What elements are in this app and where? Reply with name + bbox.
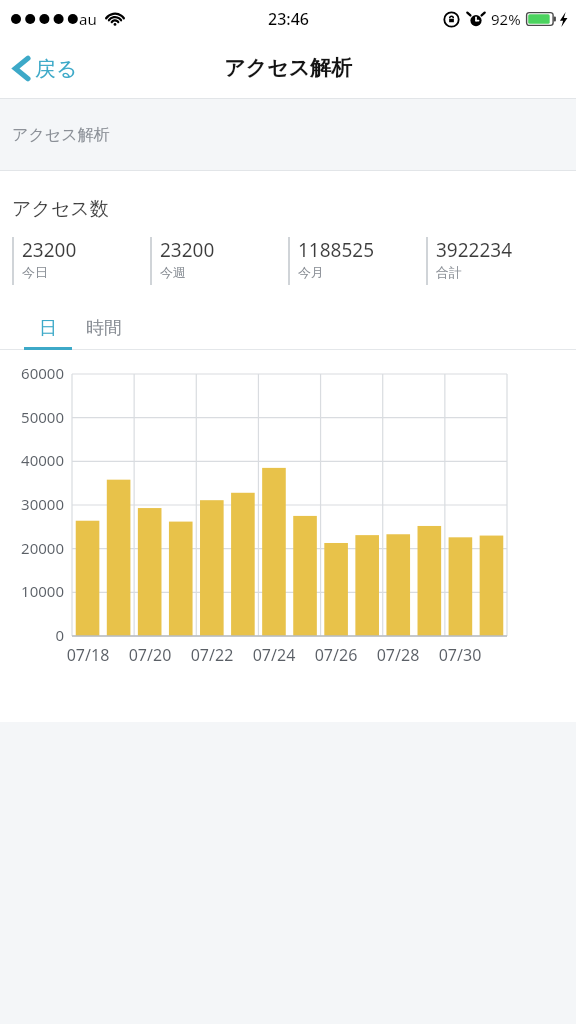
staticText: 今月 [298, 264, 324, 280]
staticText: 50000 [0, 407, 64, 427]
staticText: アクセス数 [12, 197, 109, 221]
staticText: au [79, 9, 97, 29]
staticText: 07/30 [430, 644, 490, 666]
staticText: 23200 [22, 237, 77, 263]
button[interactable]: 日 [24, 309, 72, 347]
staticText: 日 [39, 317, 57, 340]
staticText: 07/24 [244, 644, 304, 666]
button[interactable]: 戻る [0, 44, 94, 93]
staticText: 30000 [0, 494, 64, 514]
staticText: 07/28 [368, 644, 428, 666]
staticText: 92% [491, 9, 521, 29]
staticText: アクセス解析 [12, 125, 110, 145]
staticText: 今週 [160, 264, 186, 280]
staticText: 20000 [0, 538, 64, 558]
staticText: 0 [0, 625, 64, 645]
staticText: 60000 [0, 363, 64, 383]
staticText: 23:46 [268, 8, 309, 30]
staticText: アクセス解析 [224, 55, 352, 81]
staticText: 07/26 [306, 644, 366, 666]
staticText: 10000 [0, 581, 64, 601]
staticText: 時間 [86, 317, 122, 340]
staticText: 1188525 [298, 237, 375, 263]
staticText: 今日 [22, 264, 48, 280]
staticText: 40000 [0, 450, 64, 470]
staticText: 3922234 [436, 237, 513, 263]
staticText: 23200 [160, 237, 215, 263]
staticText: 合計 [436, 264, 462, 280]
staticText: 07/22 [182, 644, 242, 666]
staticText: 07/20 [120, 644, 180, 666]
staticText: 戻る [35, 56, 78, 82]
button[interactable]: 時間 [72, 309, 136, 347]
staticText: 07/18 [58, 644, 118, 666]
